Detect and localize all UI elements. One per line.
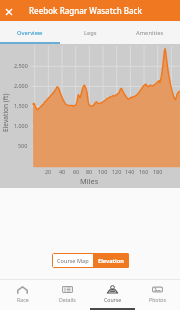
staticText: Reebok Ragnar Wasatch Back xyxy=(29,5,142,16)
staticText: 20 xyxy=(45,168,52,175)
button[interactable]: Elevation xyxy=(93,253,129,268)
staticText: 60 xyxy=(73,168,80,175)
button[interactable]: Course Map xyxy=(52,253,93,268)
button[interactable]: Course xyxy=(90,280,135,310)
button[interactable]: Race xyxy=(0,280,45,310)
button[interactable]: Photos xyxy=(135,280,180,310)
staticText: 2,000 xyxy=(14,82,28,89)
staticText: 160 xyxy=(139,168,149,175)
button[interactable]: Amenities xyxy=(120,21,180,42)
staticText: Race xyxy=(17,296,29,303)
staticText: 180 xyxy=(153,168,163,175)
staticText: 40 xyxy=(59,168,66,175)
staticText: 1,000 xyxy=(14,122,28,129)
staticText: Elevation (ft) xyxy=(1,93,10,132)
staticText: 500 xyxy=(18,142,28,149)
staticText: Amenities xyxy=(136,29,164,37)
staticText: Miles xyxy=(80,176,99,186)
button[interactable]: Overview xyxy=(0,21,60,42)
staticText: 120 xyxy=(112,168,122,175)
button[interactable]: Close xyxy=(0,1,17,22)
staticText: Legs xyxy=(84,29,97,37)
staticText: Elevation xyxy=(98,257,124,265)
staticText: Photos xyxy=(149,296,166,303)
staticText: Course Map xyxy=(57,257,89,265)
staticText: Details xyxy=(59,296,76,303)
button[interactable]: Details xyxy=(45,280,90,310)
staticText: Course xyxy=(104,296,122,303)
staticText: 100 xyxy=(98,168,108,175)
staticText: Overview xyxy=(17,29,43,37)
button[interactable]: Legs xyxy=(60,21,120,42)
staticText: 80 xyxy=(86,168,93,175)
staticText: 2,500 xyxy=(14,62,28,69)
staticText: 1,500 xyxy=(14,102,28,109)
staticText: 140 xyxy=(125,168,135,175)
